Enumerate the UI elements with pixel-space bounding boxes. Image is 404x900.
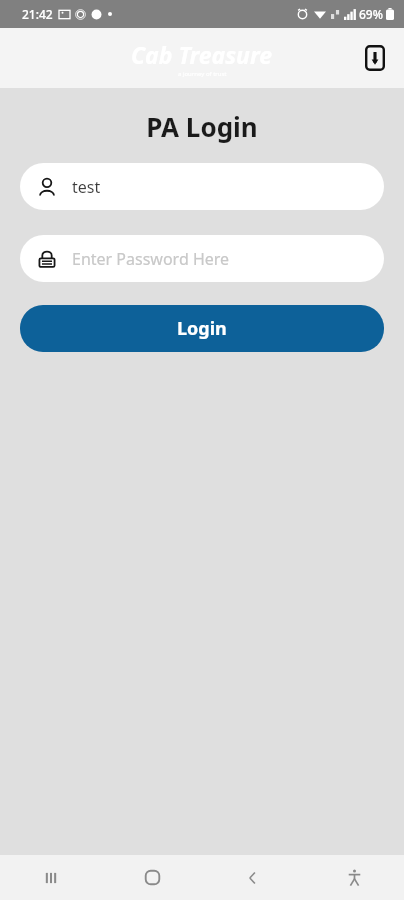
staticText: a journey of trust — [178, 70, 227, 78]
staticText: 69% — [359, 6, 383, 22]
button[interactable]: Accessibility — [330, 855, 378, 900]
button[interactable]: Home — [128, 855, 176, 900]
staticText: Enter Password Here — [72, 248, 230, 270]
button[interactable]: Recents — [27, 855, 75, 900]
button[interactable]: test — [20, 163, 384, 210]
staticText: Cab Treasure — [131, 39, 273, 70]
button[interactable]: Back — [229, 855, 277, 900]
staticText: 21:42 — [22, 6, 53, 22]
staticText: Login — [177, 316, 227, 341]
button[interactable]: Enter Password Here — [20, 235, 384, 282]
button[interactable]: Login — [20, 305, 384, 352]
staticText: PA Login — [146, 109, 258, 144]
staticText: test — [72, 176, 101, 198]
button[interactable]: Install app — [358, 41, 392, 75]
